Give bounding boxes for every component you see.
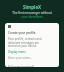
staticText: Create your profile <box>8 31 36 35</box>
staticText: Display name <box>8 50 26 54</box>
staticText: SimpleX <box>23 4 42 10</box>
staticText: Full name (optional) <box>8 65 35 67</box>
staticText: The first messenger without <box>12 11 52 15</box>
staticText: Your profile, contacts and delivered mes… <box>8 37 42 47</box>
staticText: Enter your name... <box>8 56 33 60</box>
staticText: user identifiers <box>21 15 43 19</box>
